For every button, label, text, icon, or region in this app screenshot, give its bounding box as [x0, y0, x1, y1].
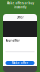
staticText: Offer [16, 16, 23, 19]
button[interactable]: Make offer [5, 61, 34, 65]
staticText: Make offers or buy [6, 1, 33, 5]
staticText: Make offer [12, 61, 28, 65]
staticText: Your offer [5, 39, 19, 42]
staticText: instantly [14, 5, 26, 9]
